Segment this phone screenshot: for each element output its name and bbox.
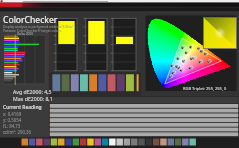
- staticText: fL: 84,73: [3, 123, 21, 129]
- staticText: Max dE2000: 8,1: [13, 95, 53, 102]
- staticText: Current Reading: [3, 104, 42, 111]
- staticText: ColorChecker: [3, 14, 58, 26]
- staticText: x: 0,4169: [3, 111, 22, 117]
- staticText: y: 0,5054: [3, 117, 22, 123]
- staticText: Pantone ColorChecker® target colors.: [3, 28, 62, 32]
- staticText: cd/m²: 290,36: [3, 129, 32, 135]
- button[interactable]: CalMAN ColorChecker analysis: [0, 0, 239, 148]
- staticText: Avg dE2000: 4,5: [13, 88, 52, 95]
- staticText: Delta 2000: [17, 32, 34, 36]
- staticText: RGB Triplet: 255, 255, 0: [183, 86, 227, 91]
- staticText: Display analysis is performed with the X…: [3, 24, 73, 28]
